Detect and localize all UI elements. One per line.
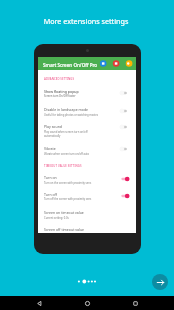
staticText: Turn off xyxy=(44,192,57,197)
staticText: Turn off the screen with proximity sens xyxy=(44,197,92,201)
staticText: Vibrate when screen turn on/off auto xyxy=(44,152,90,156)
staticText: Turn on the screen with proximity sens xyxy=(44,181,92,185)
button[interactable]: Switch on xyxy=(116,190,130,202)
button[interactable] xyxy=(38,223,136,233)
button[interactable]: Switch off xyxy=(116,143,130,155)
button[interactable]: Back xyxy=(32,296,46,310)
button[interactable] xyxy=(38,205,136,221)
staticText: Screen turn On/Off faster xyxy=(44,94,76,98)
staticText: Turn on xyxy=(44,175,57,180)
staticText: Useful for taking photos or watching mov… xyxy=(44,113,98,117)
button[interactable] xyxy=(38,171,136,187)
staticText: Play sound xyxy=(44,124,62,129)
button[interactable] xyxy=(38,188,136,204)
button[interactable]: Recent apps xyxy=(128,296,142,310)
button[interactable]: Next xyxy=(152,274,168,290)
staticText: TIMEOUT VALUE SETTINGS xyxy=(44,164,82,168)
button[interactable] xyxy=(38,84,136,100)
button[interactable] xyxy=(38,119,136,139)
staticText: Vibrate xyxy=(44,146,56,151)
button[interactable]: Switch off xyxy=(116,121,130,133)
staticText: Screen off timeout value xyxy=(44,227,85,232)
staticText: Show floating popup xyxy=(44,89,79,94)
button[interactable]: Switch off xyxy=(116,105,130,117)
button[interactable]: Home xyxy=(80,296,94,310)
staticText: Screen on timeout value xyxy=(44,210,84,215)
button[interactable]: Switch off xyxy=(116,87,130,99)
staticText: ADVANCED SETTINGS xyxy=(44,77,75,81)
staticText: automatically xyxy=(44,134,61,138)
staticText: More extensions settings xyxy=(0,16,173,26)
button[interactable]: Switch on xyxy=(116,173,130,185)
button[interactable] xyxy=(38,142,136,158)
button[interactable] xyxy=(38,102,136,118)
staticText: Disable in landscape mode xyxy=(44,107,89,112)
staticText: Smart Screen On/Off Pro xyxy=(43,62,98,68)
staticText: Current setting: 0.0s xyxy=(44,216,69,220)
staticText: Play sound when screen turn on/off xyxy=(44,130,88,134)
